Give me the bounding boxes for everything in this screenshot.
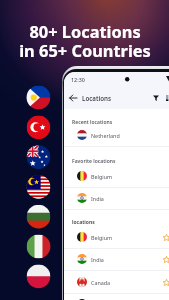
button[interactable]: Filter bbox=[149, 91, 162, 104]
button[interactable]: Favorite bbox=[161, 254, 169, 265]
staticText: in 65+ Countries bbox=[19, 39, 151, 61]
staticText: Canada bbox=[91, 279, 111, 286]
staticText: Netherland bbox=[91, 132, 120, 139]
button[interactable]: Favorite bbox=[161, 277, 169, 288]
staticText: 12:30 bbox=[71, 76, 85, 83]
button[interactable]: Favorite bbox=[161, 232, 169, 243]
staticText: Belgium bbox=[91, 173, 113, 180]
staticText: India bbox=[91, 256, 104, 263]
staticText: locations bbox=[72, 219, 95, 226]
button[interactable]: View options bbox=[162, 91, 169, 104]
button[interactable]: Canada bbox=[64, 271, 169, 293]
button[interactable]: Germany bbox=[64, 293, 169, 300]
staticText: Locations bbox=[82, 94, 112, 102]
button[interactable]: Netherland bbox=[64, 124, 169, 146]
staticText: India bbox=[91, 195, 104, 202]
button[interactable]: India bbox=[64, 187, 169, 209]
button[interactable]: Back bbox=[66, 91, 80, 105]
button[interactable]: India bbox=[64, 248, 169, 270]
staticText: Favorite locations bbox=[72, 158, 116, 165]
staticText: Belgium bbox=[91, 234, 113, 241]
button[interactable]: Belgium bbox=[64, 226, 169, 248]
staticText: 80+ Locations bbox=[29, 20, 141, 42]
button[interactable]: Belgium bbox=[64, 165, 169, 187]
staticText: Recent locations bbox=[72, 119, 113, 126]
